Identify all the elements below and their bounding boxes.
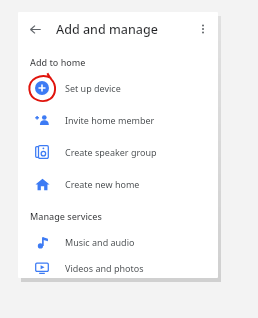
staticText: Manage services xyxy=(30,210,102,222)
staticText: Create new home xyxy=(65,178,140,190)
button[interactable]: Set up device xyxy=(18,72,218,104)
button[interactable]: Videos and photos xyxy=(18,258,218,278)
button[interactable]: Create speaker group xyxy=(18,136,218,168)
button[interactable]: More options xyxy=(191,17,215,41)
button[interactable]: Invite home member xyxy=(18,104,218,136)
staticText: Set up device xyxy=(65,82,121,94)
staticText: Music and audio xyxy=(65,236,135,248)
staticText: Add to home xyxy=(30,56,86,68)
button[interactable]: Music and audio xyxy=(18,226,218,258)
staticText: Add and manage xyxy=(56,21,158,38)
staticText: Create speaker group xyxy=(65,146,157,158)
button[interactable]: Create new home xyxy=(18,168,218,200)
staticText: Invite home member xyxy=(65,114,155,126)
staticText: Videos and photos xyxy=(65,262,144,274)
button[interactable]: Back xyxy=(23,17,47,41)
